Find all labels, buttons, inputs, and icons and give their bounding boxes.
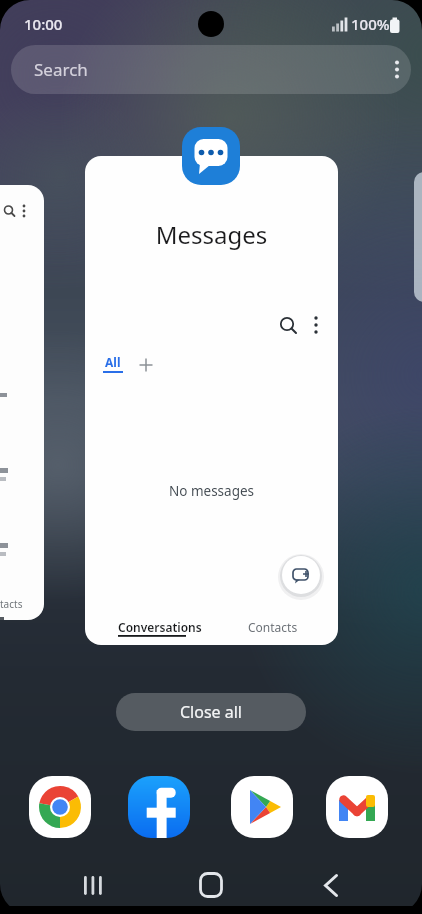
- button[interactable]: [231, 776, 293, 838]
- staticText: 10:00: [24, 14, 63, 34]
- staticText: Search: [34, 58, 88, 81]
- button[interactable]: [326, 776, 388, 838]
- button[interactable]: [182, 127, 240, 185]
- staticText: Contacts: [248, 619, 298, 635]
- button[interactable]: Search: [11, 45, 411, 94]
- button[interactable]: [282, 556, 320, 594]
- staticText: tacts: [0, 597, 23, 611]
- button[interactable]: tacts: [0, 185, 44, 620]
- button[interactable]: Close all: [116, 693, 306, 731]
- button[interactable]: Messages: [85, 156, 338, 645]
- button[interactable]: Conversations: [98, 611, 208, 643]
- button[interactable]: [187, 862, 235, 910]
- staticText: No messages: [85, 482, 338, 500]
- button[interactable]: [306, 862, 354, 910]
- staticText: All: [105, 354, 121, 370]
- button[interactable]: [69, 862, 117, 910]
- staticText: Messages: [85, 218, 338, 251]
- staticText: Close all: [180, 701, 243, 723]
- button[interactable]: Contacts: [220, 611, 320, 643]
- button[interactable]: [128, 776, 190, 838]
- staticText: 100%: [351, 14, 390, 34]
- button[interactable]: [29, 776, 91, 838]
- staticText: Conversations: [118, 619, 202, 635]
